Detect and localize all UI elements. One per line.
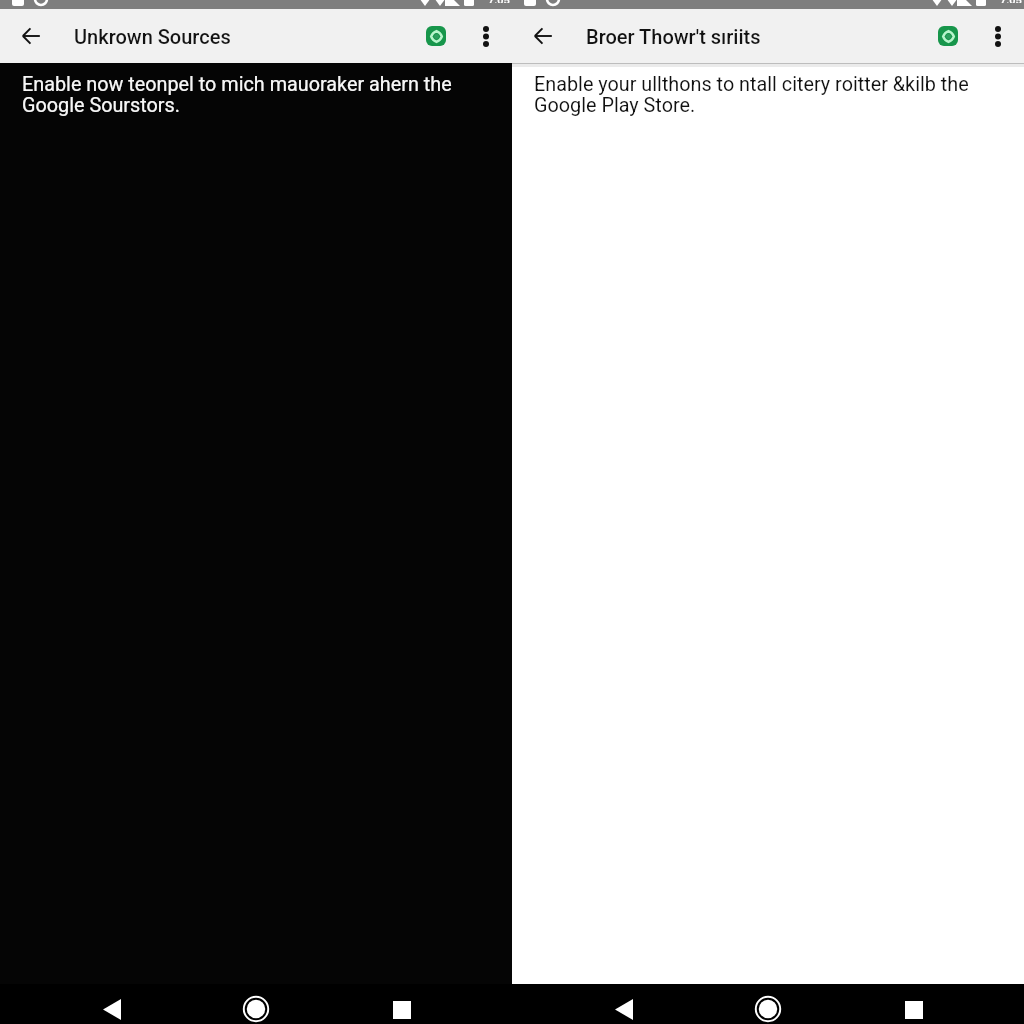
button[interactable]: Visibility — [414, 14, 458, 58]
staticText: Enable your ullthons to ntall citery roi… — [534, 73, 1002, 117]
button[interactable]: More options — [465, 15, 507, 57]
button[interactable]: Back — [586, 995, 662, 1024]
staticText: 7:05 — [1000, 0, 1022, 3]
button[interactable]: Recent apps — [364, 995, 440, 1024]
button[interactable]: More options — [977, 15, 1019, 57]
button[interactable]: Home — [730, 993, 806, 1024]
button[interactable]: Visibility — [926, 14, 970, 58]
staticText: Enable now teonpel to mich mauoraker ahe… — [22, 73, 490, 117]
button[interactable]: Recent apps — [876, 995, 952, 1024]
button[interactable]: Navigate up — [7, 12, 55, 60]
staticText: Broer Thowr't sıriits — [586, 25, 761, 48]
button[interactable]: Back — [74, 995, 150, 1024]
button[interactable]: Home — [218, 993, 294, 1024]
button[interactable]: Navigate up — [519, 12, 567, 60]
staticText: Unkrown Sources — [74, 25, 231, 48]
staticText: 7:05 — [488, 0, 510, 3]
